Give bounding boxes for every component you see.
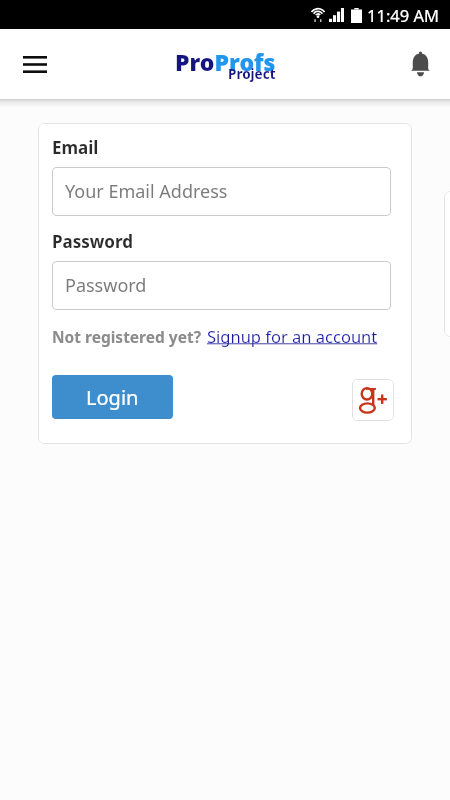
button[interactable]: Notifications — [396, 40, 444, 88]
button[interactable]: Sign in with Google Plus — [352, 379, 394, 421]
button[interactable]: Login — [52, 375, 173, 419]
button[interactable]: Password — [52, 261, 391, 310]
staticText: ProProfs — [175, 46, 276, 77]
staticText: Email — [52, 136, 99, 159]
staticText: 11:49 AM — [367, 4, 439, 26]
staticText: Login — [86, 384, 139, 411]
staticText: Password — [52, 230, 133, 253]
button[interactable]: Your Email Address — [52, 167, 391, 216]
button[interactable]: Signup for an account — [207, 325, 378, 347]
staticText: Your Email Address — [65, 179, 228, 204]
staticText: Signup for an account — [207, 325, 378, 347]
staticText: Not registered yet? — [52, 326, 202, 347]
button[interactable]: Open navigation menu — [11, 40, 59, 88]
staticText: Project — [228, 65, 276, 83]
staticText: Password — [65, 273, 147, 298]
